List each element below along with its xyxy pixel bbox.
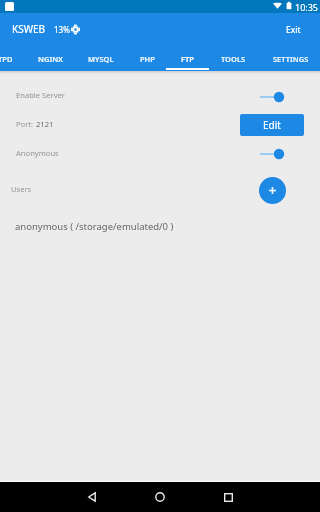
button[interactable]: Edit (240, 114, 304, 136)
staticText: NGINX (38, 54, 63, 64)
staticText: FTP (181, 54, 194, 64)
button[interactable]: MYSQL (72, 44, 129, 71)
button[interactable]: Back (62, 482, 122, 512)
button[interactable]: FTP (166, 44, 209, 71)
staticText: 2121 (36, 119, 54, 129)
staticText: PHP (140, 54, 155, 64)
button[interactable]: NGINX (28, 44, 72, 71)
button[interactable]: TOOLS (209, 44, 257, 71)
button[interactable]: PHP (129, 44, 166, 71)
staticText: KSWEB (12, 22, 46, 36)
staticText: Enable Server (16, 90, 65, 100)
staticText: TOOLS (221, 54, 246, 64)
staticText: HTTPD (0, 54, 13, 64)
staticText: 10:35 (295, 1, 319, 13)
staticText: MYSQL (88, 54, 114, 64)
staticText: Anonymous (16, 148, 59, 158)
button[interactable]: HTTPD (0, 44, 28, 71)
staticText: Port: (16, 119, 36, 129)
staticText: Exit (286, 24, 301, 36)
staticText: Users (11, 184, 32, 194)
button[interactable]: SETTINGS (257, 44, 320, 71)
staticText: SETTINGS (273, 54, 309, 64)
staticText: Edit (263, 118, 281, 132)
button[interactable]: Add user (259, 177, 286, 204)
staticText: anonymous ( /storage/emulated/0 ) (15, 220, 174, 233)
staticText: 13% (54, 24, 70, 35)
button[interactable]: Home (130, 482, 190, 512)
button[interactable]: Toggle (254, 87, 292, 107)
button[interactable]: Recent apps (198, 482, 258, 512)
button[interactable]: Toggle (254, 144, 292, 164)
button[interactable]: Exit (272, 17, 320, 41)
